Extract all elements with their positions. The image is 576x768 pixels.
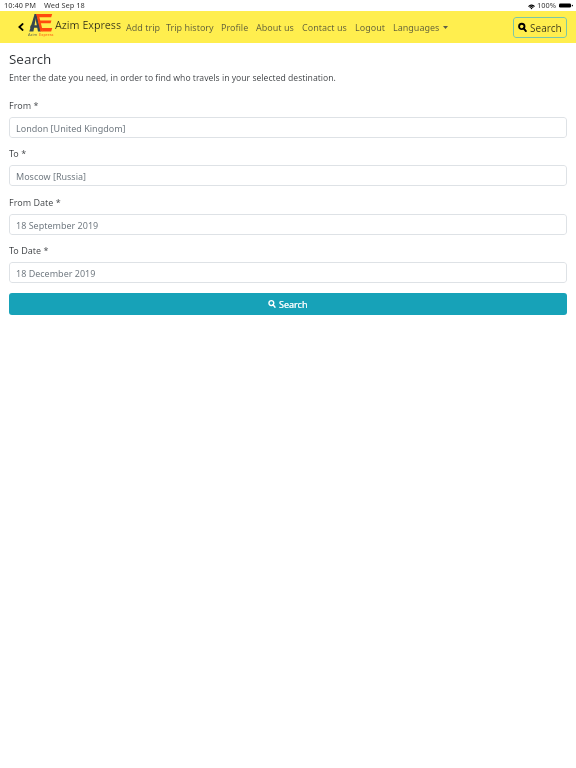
staticText: Search (279, 298, 308, 310)
staticText: To Date * (9, 244, 49, 256)
staticText: Logout (355, 21, 385, 33)
button[interactable]: Trip history (163, 17, 217, 37)
staticText: To * (9, 147, 27, 159)
button[interactable]: 18 September 2019 (9, 214, 567, 235)
staticText: Contact us (302, 21, 347, 33)
button[interactable]: Languages (390, 17, 451, 37)
staticText: 100% (537, 0, 556, 10)
button[interactable]: Search (513, 17, 567, 38)
staticText: Moscow [Russia] (16, 170, 86, 182)
staticText: 10:40 PM (4, 0, 37, 10)
button[interactable]: 18 December 2019 (9, 262, 567, 283)
staticText: Profile (221, 21, 249, 33)
button[interactable]: About us (253, 17, 297, 37)
staticText: Azim Express (55, 18, 122, 33)
staticText: Add trip (126, 21, 160, 33)
staticText: Trip history (166, 21, 214, 33)
button[interactable]: Search (9, 293, 567, 315)
staticText: 18 December 2019 (16, 267, 96, 279)
staticText: Enter the date you need, in order to fin… (9, 72, 336, 84)
staticText: Wed Sep 18 (44, 0, 85, 10)
staticText: Search (9, 50, 52, 68)
staticText: From * (9, 99, 39, 111)
button[interactable]: Add trip (123, 17, 163, 37)
button[interactable]: London [United Kingdom] (9, 117, 567, 138)
button[interactable]: Moscow [Russia] (9, 165, 567, 186)
button[interactable]: Logout (352, 17, 388, 37)
button[interactable]: Profile (218, 17, 252, 37)
staticText: Search (530, 21, 562, 35)
button[interactable]: Contact us (299, 17, 350, 37)
staticText: London [United Kingdom] (16, 122, 126, 134)
staticText: About us (256, 21, 294, 33)
staticText: From Date * (9, 196, 61, 208)
staticText: Express (38, 32, 54, 37)
staticText: 18 September 2019 (16, 219, 99, 231)
staticText: Azim (28, 32, 38, 37)
staticText: Languages (393, 21, 440, 33)
button[interactable]: Back (16, 22, 26, 32)
